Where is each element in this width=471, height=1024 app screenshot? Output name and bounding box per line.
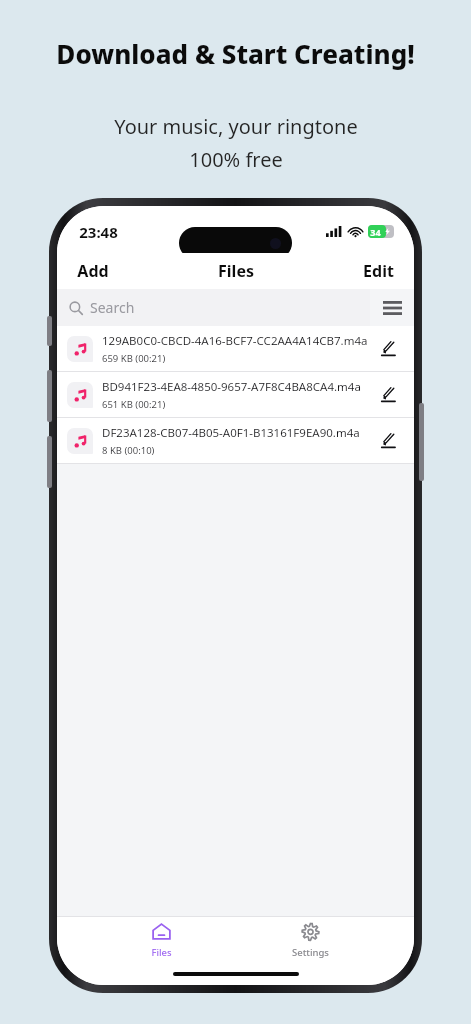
staticText: Download & Start Creating! bbox=[56, 36, 415, 71]
button[interactable]: Edit bbox=[343, 254, 414, 288]
button[interactable]: Settings bbox=[265, 919, 355, 962]
staticText: 659 KB (00:21) bbox=[102, 352, 374, 365]
staticText: 23:48 bbox=[79, 222, 118, 242]
staticText: Edit bbox=[363, 260, 394, 282]
button[interactable]: DF23A128-CB07-4B05-A0F1-B13161F9EA90.m4a bbox=[57, 418, 414, 463]
staticText: 129AB0C0-CBCD-4A16-BCF7-CC2AA4A14CB7.m4a bbox=[102, 333, 374, 349]
button[interactable]: 129AB0C0-CBCD-4A16-BCF7-CC2AA4A14CB7.m4a bbox=[57, 326, 414, 371]
button[interactable]: Search bbox=[57, 289, 370, 326]
staticText: Settings bbox=[292, 946, 329, 959]
staticText: Add bbox=[77, 260, 109, 282]
staticText: Files bbox=[151, 946, 172, 959]
staticText: Files bbox=[218, 260, 254, 282]
button[interactable]: Menu bbox=[370, 289, 414, 326]
button[interactable]: Add bbox=[57, 254, 129, 288]
staticText: Your music, your ringtone bbox=[114, 113, 358, 140]
staticText: 8 KB (00:10) bbox=[102, 444, 374, 457]
staticText: Search bbox=[90, 298, 135, 317]
staticText: 100% free bbox=[189, 146, 283, 173]
button[interactable]: Files bbox=[116, 919, 206, 962]
button[interactable]: BD941F23-4EA8-4850-9657-A7F8C4BA8CA4.m4a bbox=[57, 372, 414, 417]
staticText: DF23A128-CB07-4B05-A0F1-B13161F9EA90.m4a bbox=[102, 425, 374, 441]
button[interactable]: Edit file bbox=[374, 380, 404, 410]
staticText: 651 KB (00:21) bbox=[102, 398, 374, 411]
button[interactable]: Edit file bbox=[374, 334, 404, 364]
staticText: 34 bbox=[370, 226, 381, 238]
button[interactable]: Edit file bbox=[374, 426, 404, 456]
staticText: BD941F23-4EA8-4850-9657-A7F8C4BA8CA4.m4a bbox=[102, 379, 374, 395]
